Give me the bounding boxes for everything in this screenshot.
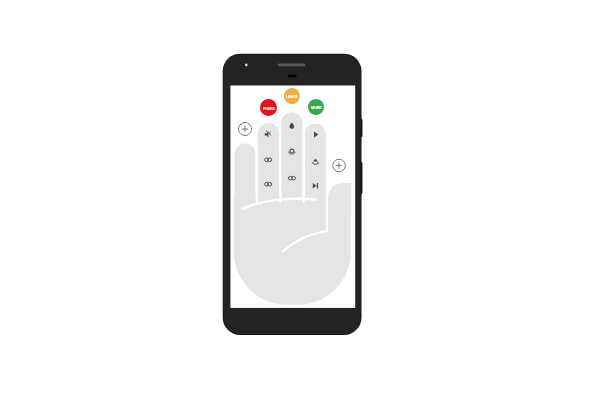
staticText: PHONE — [263, 106, 275, 110]
button[interactable]: MUSIC — [308, 99, 324, 115]
staticText: LIGHTS — [286, 94, 298, 98]
staticText: MUSIC — [311, 105, 322, 109]
button[interactable]: Add device — [239, 123, 252, 136]
button[interactable]: PHONE — [260, 99, 277, 116]
button[interactable]: Add shortcut — [333, 159, 346, 172]
button[interactable]: LIGHTS — [284, 88, 300, 104]
